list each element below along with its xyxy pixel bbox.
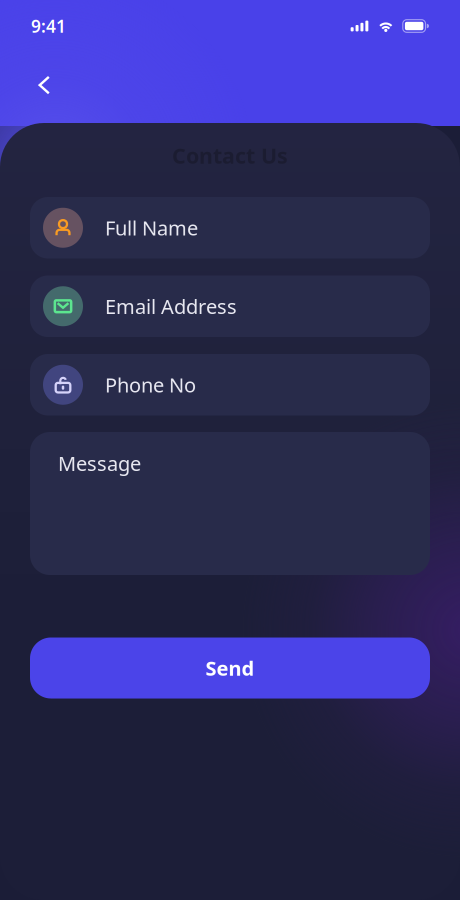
button[interactable]: Full Name bbox=[30, 197, 430, 258]
staticText: Email Address bbox=[105, 293, 237, 320]
button[interactable]: Email Address bbox=[30, 275, 430, 337]
staticText: 9:41 bbox=[31, 14, 66, 37]
staticText: Contact Us bbox=[172, 141, 288, 170]
button[interactable]: Message bbox=[30, 432, 430, 575]
button[interactable]: Back bbox=[22, 63, 66, 107]
staticText: Message bbox=[58, 450, 141, 477]
staticText: Full Name bbox=[105, 214, 198, 241]
staticText: Phone No bbox=[105, 371, 196, 398]
button[interactable]: Send bbox=[30, 637, 430, 698]
staticText: Send bbox=[205, 655, 254, 681]
button[interactable]: Phone No bbox=[30, 354, 430, 415]
